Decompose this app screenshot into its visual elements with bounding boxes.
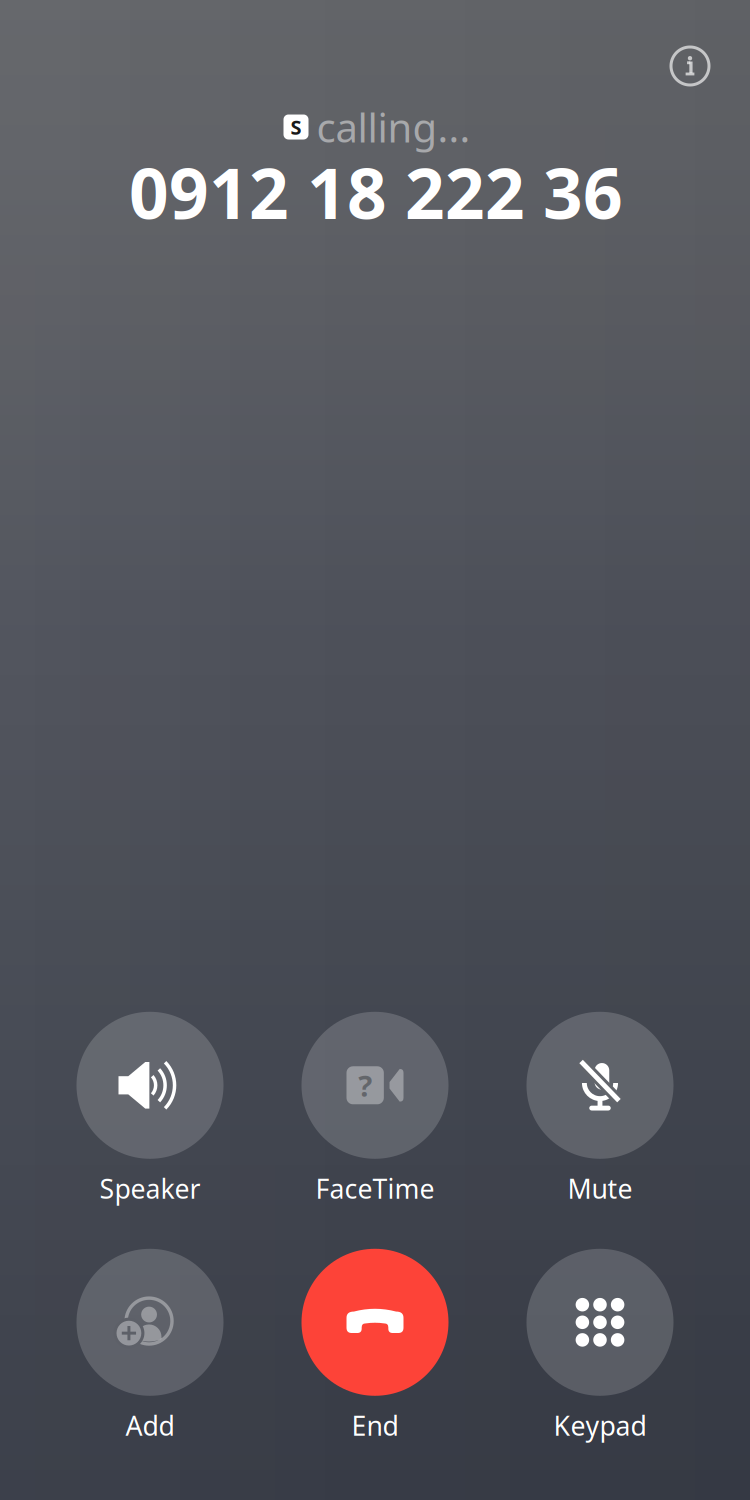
staticText: Mute (567, 1171, 632, 1206)
staticText: ? (358, 1066, 372, 1105)
button[interactable]: Mute (487, 1012, 712, 1206)
button[interactable]: End (262, 1249, 487, 1443)
staticText: Keypad (553, 1408, 646, 1443)
staticText: FaceTime (315, 1171, 434, 1206)
staticText: 0912 18 222 36 (129, 146, 623, 238)
staticText: S (290, 114, 301, 140)
staticText: Add (125, 1408, 174, 1443)
button[interactable]: Keypad (487, 1249, 712, 1443)
staticText: End (351, 1408, 398, 1443)
button[interactable]: Speaker (37, 1012, 262, 1206)
staticText: Speaker (99, 1171, 200, 1206)
staticText: calling... (316, 100, 470, 153)
button[interactable]: ? (262, 1012, 487, 1206)
button[interactable]: Add (37, 1249, 262, 1443)
button[interactable]: Call info (660, 36, 720, 96)
